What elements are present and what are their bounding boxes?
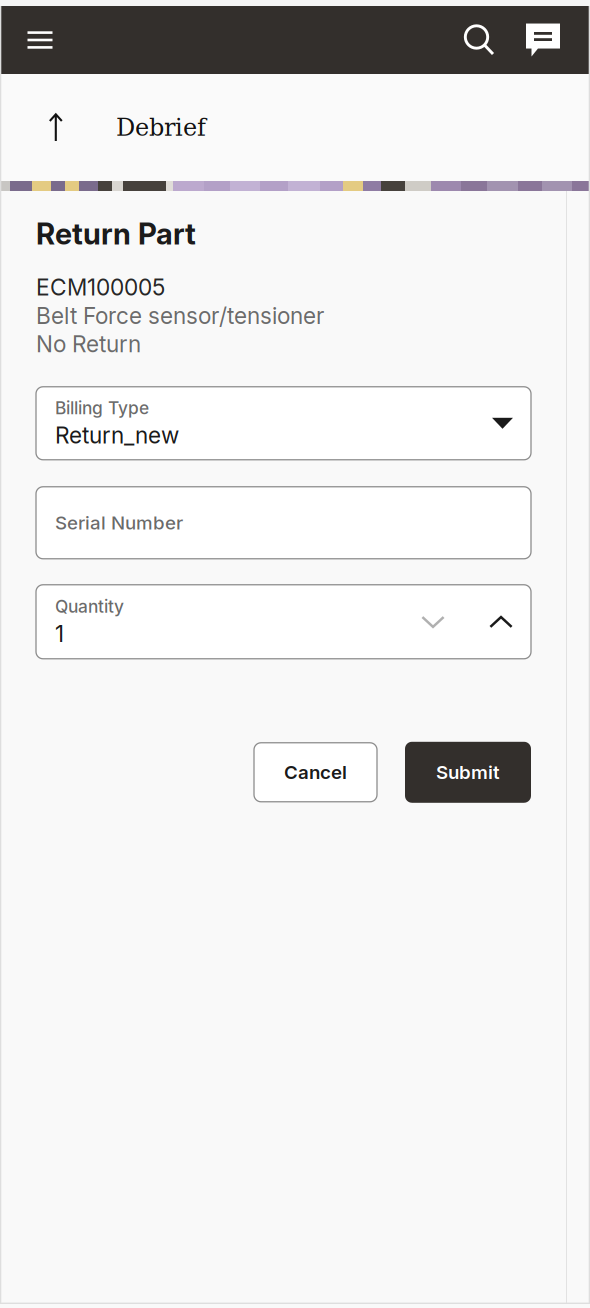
button[interactable]: Submit [405, 742, 531, 803]
button[interactable]: Menu [20, 20, 60, 60]
staticText: Billing Type [55, 398, 149, 419]
staticText: Submit [436, 761, 500, 784]
staticText: Cancel [284, 761, 347, 784]
staticText: Serial Number [55, 511, 183, 534]
staticText: Quantity [55, 596, 124, 617]
button[interactable]: Cancel [254, 743, 377, 802]
staticText: ECM100005 [36, 273, 165, 301]
staticText: 1 [55, 620, 64, 647]
button[interactable]: Messages [525, 20, 561, 60]
button[interactable]: Search [459, 20, 499, 60]
staticText: Return Part [36, 216, 196, 251]
staticText: Return_new [55, 421, 179, 449]
staticText: No Return [36, 330, 141, 358]
staticText: Belt Force sensor/tensioner [36, 302, 324, 329]
staticText: Debrief [116, 113, 206, 141]
button[interactable]: Back [33, 104, 79, 150]
